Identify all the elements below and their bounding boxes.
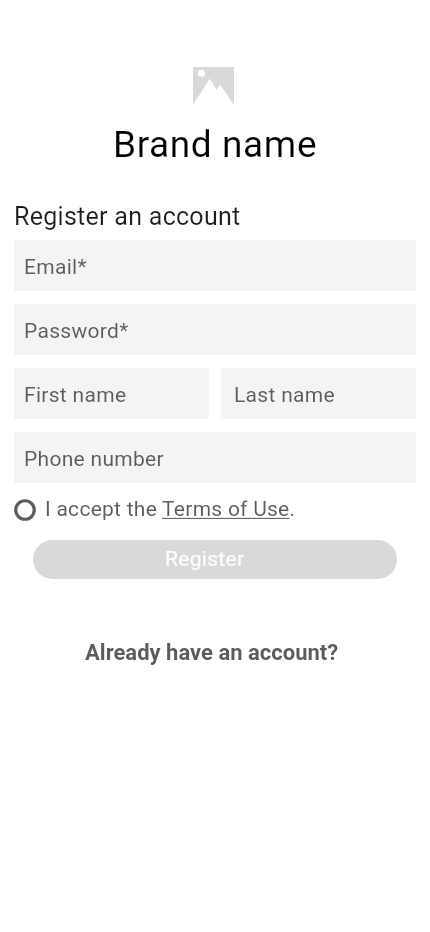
button[interactable]: Email* (14, 240, 416, 291)
button[interactable]: Password* (14, 304, 416, 355)
button[interactable]: Register (33, 540, 397, 579)
staticText: First name (24, 383, 127, 408)
button[interactable]: Already have an account? (85, 640, 339, 666)
staticText: Register an account (14, 202, 241, 231)
staticText: Last name (234, 383, 335, 408)
other: Brand logo (193, 67, 234, 104)
staticText: Brand name (113, 123, 318, 166)
button[interactable]: Last name (221, 368, 416, 419)
staticText: Register (165, 547, 245, 572)
staticText: Email* (24, 255, 87, 280)
button[interactable]: I accept the Terms of Use. (14, 497, 296, 522)
staticText: Phone number (24, 447, 164, 472)
staticText: Password* (24, 319, 129, 344)
button[interactable]: First name (14, 368, 209, 419)
button[interactable]: Phone number (14, 432, 416, 483)
staticText: I accept the Terms of Use. (45, 497, 296, 522)
